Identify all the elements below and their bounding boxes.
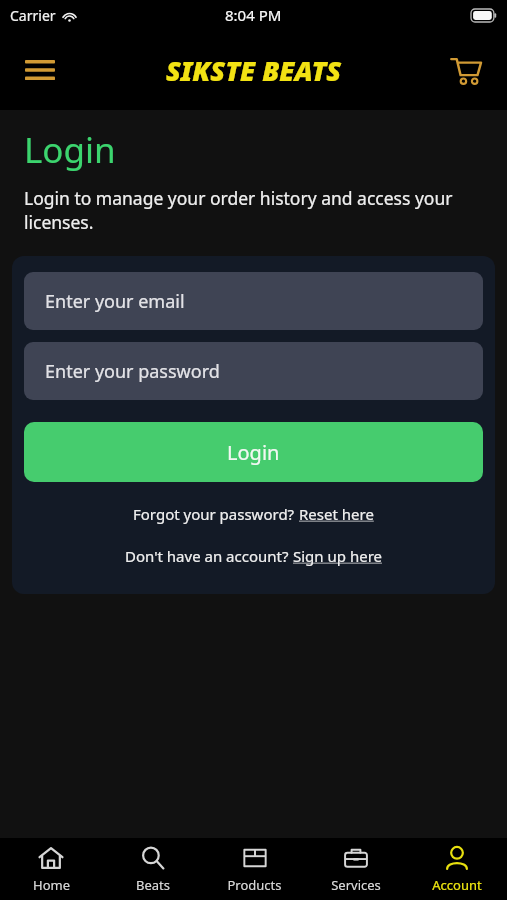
staticText: Forgot your password? xyxy=(133,504,299,524)
staticText: Carrier xyxy=(10,6,56,25)
staticText: Home xyxy=(33,876,70,894)
staticText: Login xyxy=(227,439,280,466)
button[interactable]: Account xyxy=(406,838,507,900)
staticText: Products xyxy=(227,876,282,894)
button[interactable]: Services xyxy=(305,838,406,900)
staticText: Login xyxy=(24,126,116,174)
button[interactable]: Don't have an account? xyxy=(24,546,483,566)
button[interactable]: Products xyxy=(204,838,305,900)
staticText: Don't have an account? xyxy=(125,546,293,566)
button[interactable]: Enter your email xyxy=(24,272,483,330)
staticText: Reset here xyxy=(299,504,374,524)
button[interactable]: Enter your password xyxy=(24,342,483,400)
staticText: Beats xyxy=(136,876,170,894)
staticText: Enter your email xyxy=(45,289,185,314)
staticText: Account xyxy=(432,876,482,894)
staticText: Sign up here xyxy=(293,546,382,566)
button[interactable]: Home xyxy=(0,838,102,900)
button[interactable]: Beats xyxy=(102,838,204,900)
staticText: SIKSTE BEATS xyxy=(166,52,342,89)
staticText: 8:04 PM xyxy=(225,5,282,25)
button[interactable]: Cart xyxy=(441,45,491,95)
button[interactable]: Menu xyxy=(14,44,66,96)
button[interactable]: Login xyxy=(24,422,483,482)
staticText: Enter your password xyxy=(45,359,220,384)
button[interactable]: Forgot your password? xyxy=(24,504,483,524)
staticText: Services xyxy=(331,876,381,894)
staticText: Login to manage your order history and a… xyxy=(24,186,485,234)
